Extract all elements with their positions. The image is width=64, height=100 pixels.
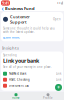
staticText: Link <box>56 78 61 81</box>
staticText: Profile <box>43 96 53 100</box>
staticText: Link <box>56 72 61 75</box>
staticText: Insights <box>2 45 19 51</box>
staticText: 9:41 <box>2 0 9 6</box>
staticText: NatWest Bank <box>9 72 26 75</box>
staticText: Open <box>53 17 61 21</box>
button[interactable]: Investment ISA <box>3 83 61 89</box>
button[interactable]: HSBC Checking <box>3 77 61 83</box>
button[interactable]: Profile <box>32 93 64 100</box>
staticText: + <box>57 84 60 91</box>
staticText: Link <box>56 84 61 87</box>
button[interactable]: Back <box>1 6 4 11</box>
button[interactable]: Home <box>0 93 32 100</box>
staticText: See all of your money in one place. <box>3 65 52 69</box>
staticText: Business Fund <box>5 6 35 11</box>
button[interactable]: NatWest Bank <box>3 71 61 77</box>
staticText: ‹ <box>1 4 3 13</box>
button[interactable]: Add <box>55 84 62 91</box>
staticText: Learn more <box>3 36 20 39</box>
staticText: Customer Support <box>10 14 30 25</box>
staticText: Spending <box>3 54 17 57</box>
staticText: Someone thought it could help you with t… <box>3 27 55 34</box>
staticText: Home <box>12 96 20 100</box>
staticText: Investment ISA <box>9 84 29 87</box>
button[interactable]: Learn more <box>3 36 20 39</box>
staticText: HSBC Checking <box>9 78 30 81</box>
staticText: ••ıl <box>57 0 63 6</box>
staticText: Link your bank <box>3 57 39 64</box>
